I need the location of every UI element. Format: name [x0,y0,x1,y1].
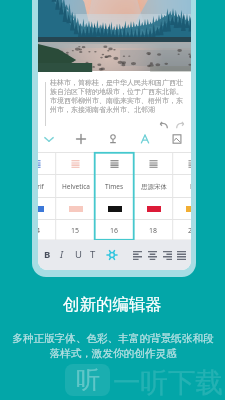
staticText: 桂林市，简称桂，是中华人民共和国广西壮 [50,78,183,87]
staticText: 思源宋体 [141,183,167,191]
staticText: 16 [110,226,119,236]
staticText: 市境西邻柳州市、南临来宾市、梧州市，东 [50,96,183,105]
button[interactable]: U [72,247,84,262]
staticText: 州市，东接湖南省永州市、北邻湖 [50,105,155,114]
staticText: U [75,248,82,261]
button[interactable]: Collapse [42,132,56,146]
staticText: 20 [188,226,191,236]
button[interactable]: Add [74,132,88,146]
button[interactable]: Settings [107,250,117,260]
button[interactable]: Align [148,251,157,260]
staticText: Times [105,182,124,191]
button[interactable]: Voice [106,132,120,146]
staticText: I [60,248,64,261]
button[interactable]: Times [95,152,134,241]
button[interactable]: Image [170,132,184,146]
button[interactable]: T [87,247,99,262]
staticText: 18 [149,226,158,236]
button[interactable]: Helvetica [56,152,95,241]
staticText: 一听下载 [113,366,223,400]
button[interactable]: Undo [158,120,169,131]
button[interactable]: B [41,247,53,262]
button[interactable]: 思源宋体 [134,152,173,241]
staticText: 创新的编辑器 [63,294,162,315]
button[interactable]: Serif [38,152,56,241]
staticText: 15 [71,226,80,236]
staticText: 听 [76,365,100,395]
button[interactable]: I [56,247,68,262]
staticText: 族自治区下辖的地级市，位于广西东北部。 [50,87,183,96]
button[interactable]: Align [163,251,172,260]
staticText: M [190,182,191,191]
staticText: T [90,248,96,261]
button[interactable]: Align [133,251,142,260]
staticText: Helvetica [62,182,90,191]
staticText: 14 [38,226,41,236]
staticText: B [44,248,51,261]
button[interactable]: M [173,152,191,241]
staticText: Serif [38,182,44,191]
button[interactable]: Font [138,132,152,146]
button[interactable]: Redo [175,120,186,131]
staticText: 多种正版字体、色彩、丰富的背景纸张和段 落样式，激发你的创作灵感 [12,332,214,360]
button[interactable]: Align [177,251,186,260]
